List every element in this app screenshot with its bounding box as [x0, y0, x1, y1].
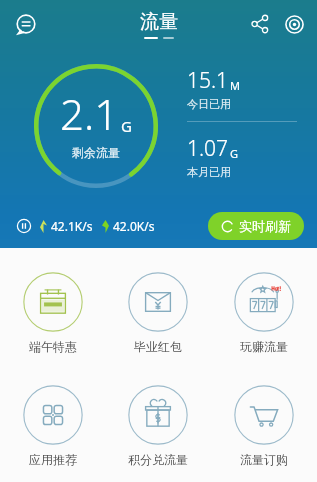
- staticText: 今日已用: [187, 97, 231, 111]
- button[interactable]: 应用推荐: [0, 369, 105, 482]
- button[interactable]: 实时刷新: [208, 212, 304, 240]
- staticText: G: [230, 146, 239, 161]
- staticText: 流量: [140, 10, 178, 34]
- staticText: 1.07: [187, 134, 229, 163]
- staticText: 应用推荐: [29, 452, 77, 467]
- button[interactable]: 积分兑流量: [105, 369, 211, 482]
- button[interactable]: Settings: [277, 7, 311, 41]
- button[interactable]: Pause: [13, 215, 35, 237]
- button[interactable]: Share: [243, 7, 277, 41]
- staticText: M: [230, 78, 240, 93]
- staticText: 2.1: [60, 85, 119, 142]
- staticText: 实时刷新: [239, 218, 291, 234]
- staticText: 15.1: [187, 66, 229, 95]
- staticText: 积分兑流量: [128, 452, 188, 467]
- button[interactable]: 端午特惠: [0, 256, 105, 369]
- staticText: 流量订购: [240, 452, 288, 467]
- button[interactable]: 流量订购: [211, 369, 317, 482]
- staticText: 42.0K/s: [113, 218, 155, 234]
- button[interactable]: Messages: [8, 6, 44, 42]
- staticText: 42.1K/s: [51, 218, 93, 234]
- staticText: 本月已用: [187, 165, 231, 179]
- staticText: 毕业红包: [134, 339, 182, 354]
- staticText: G: [121, 116, 132, 136]
- staticText: 玩赚流量: [240, 339, 288, 354]
- button[interactable]: 玩赚流量: [211, 256, 317, 369]
- staticText: 端午特惠: [29, 339, 77, 354]
- button[interactable]: 毕业红包: [105, 256, 211, 369]
- staticText: 剩余流量: [72, 145, 120, 160]
